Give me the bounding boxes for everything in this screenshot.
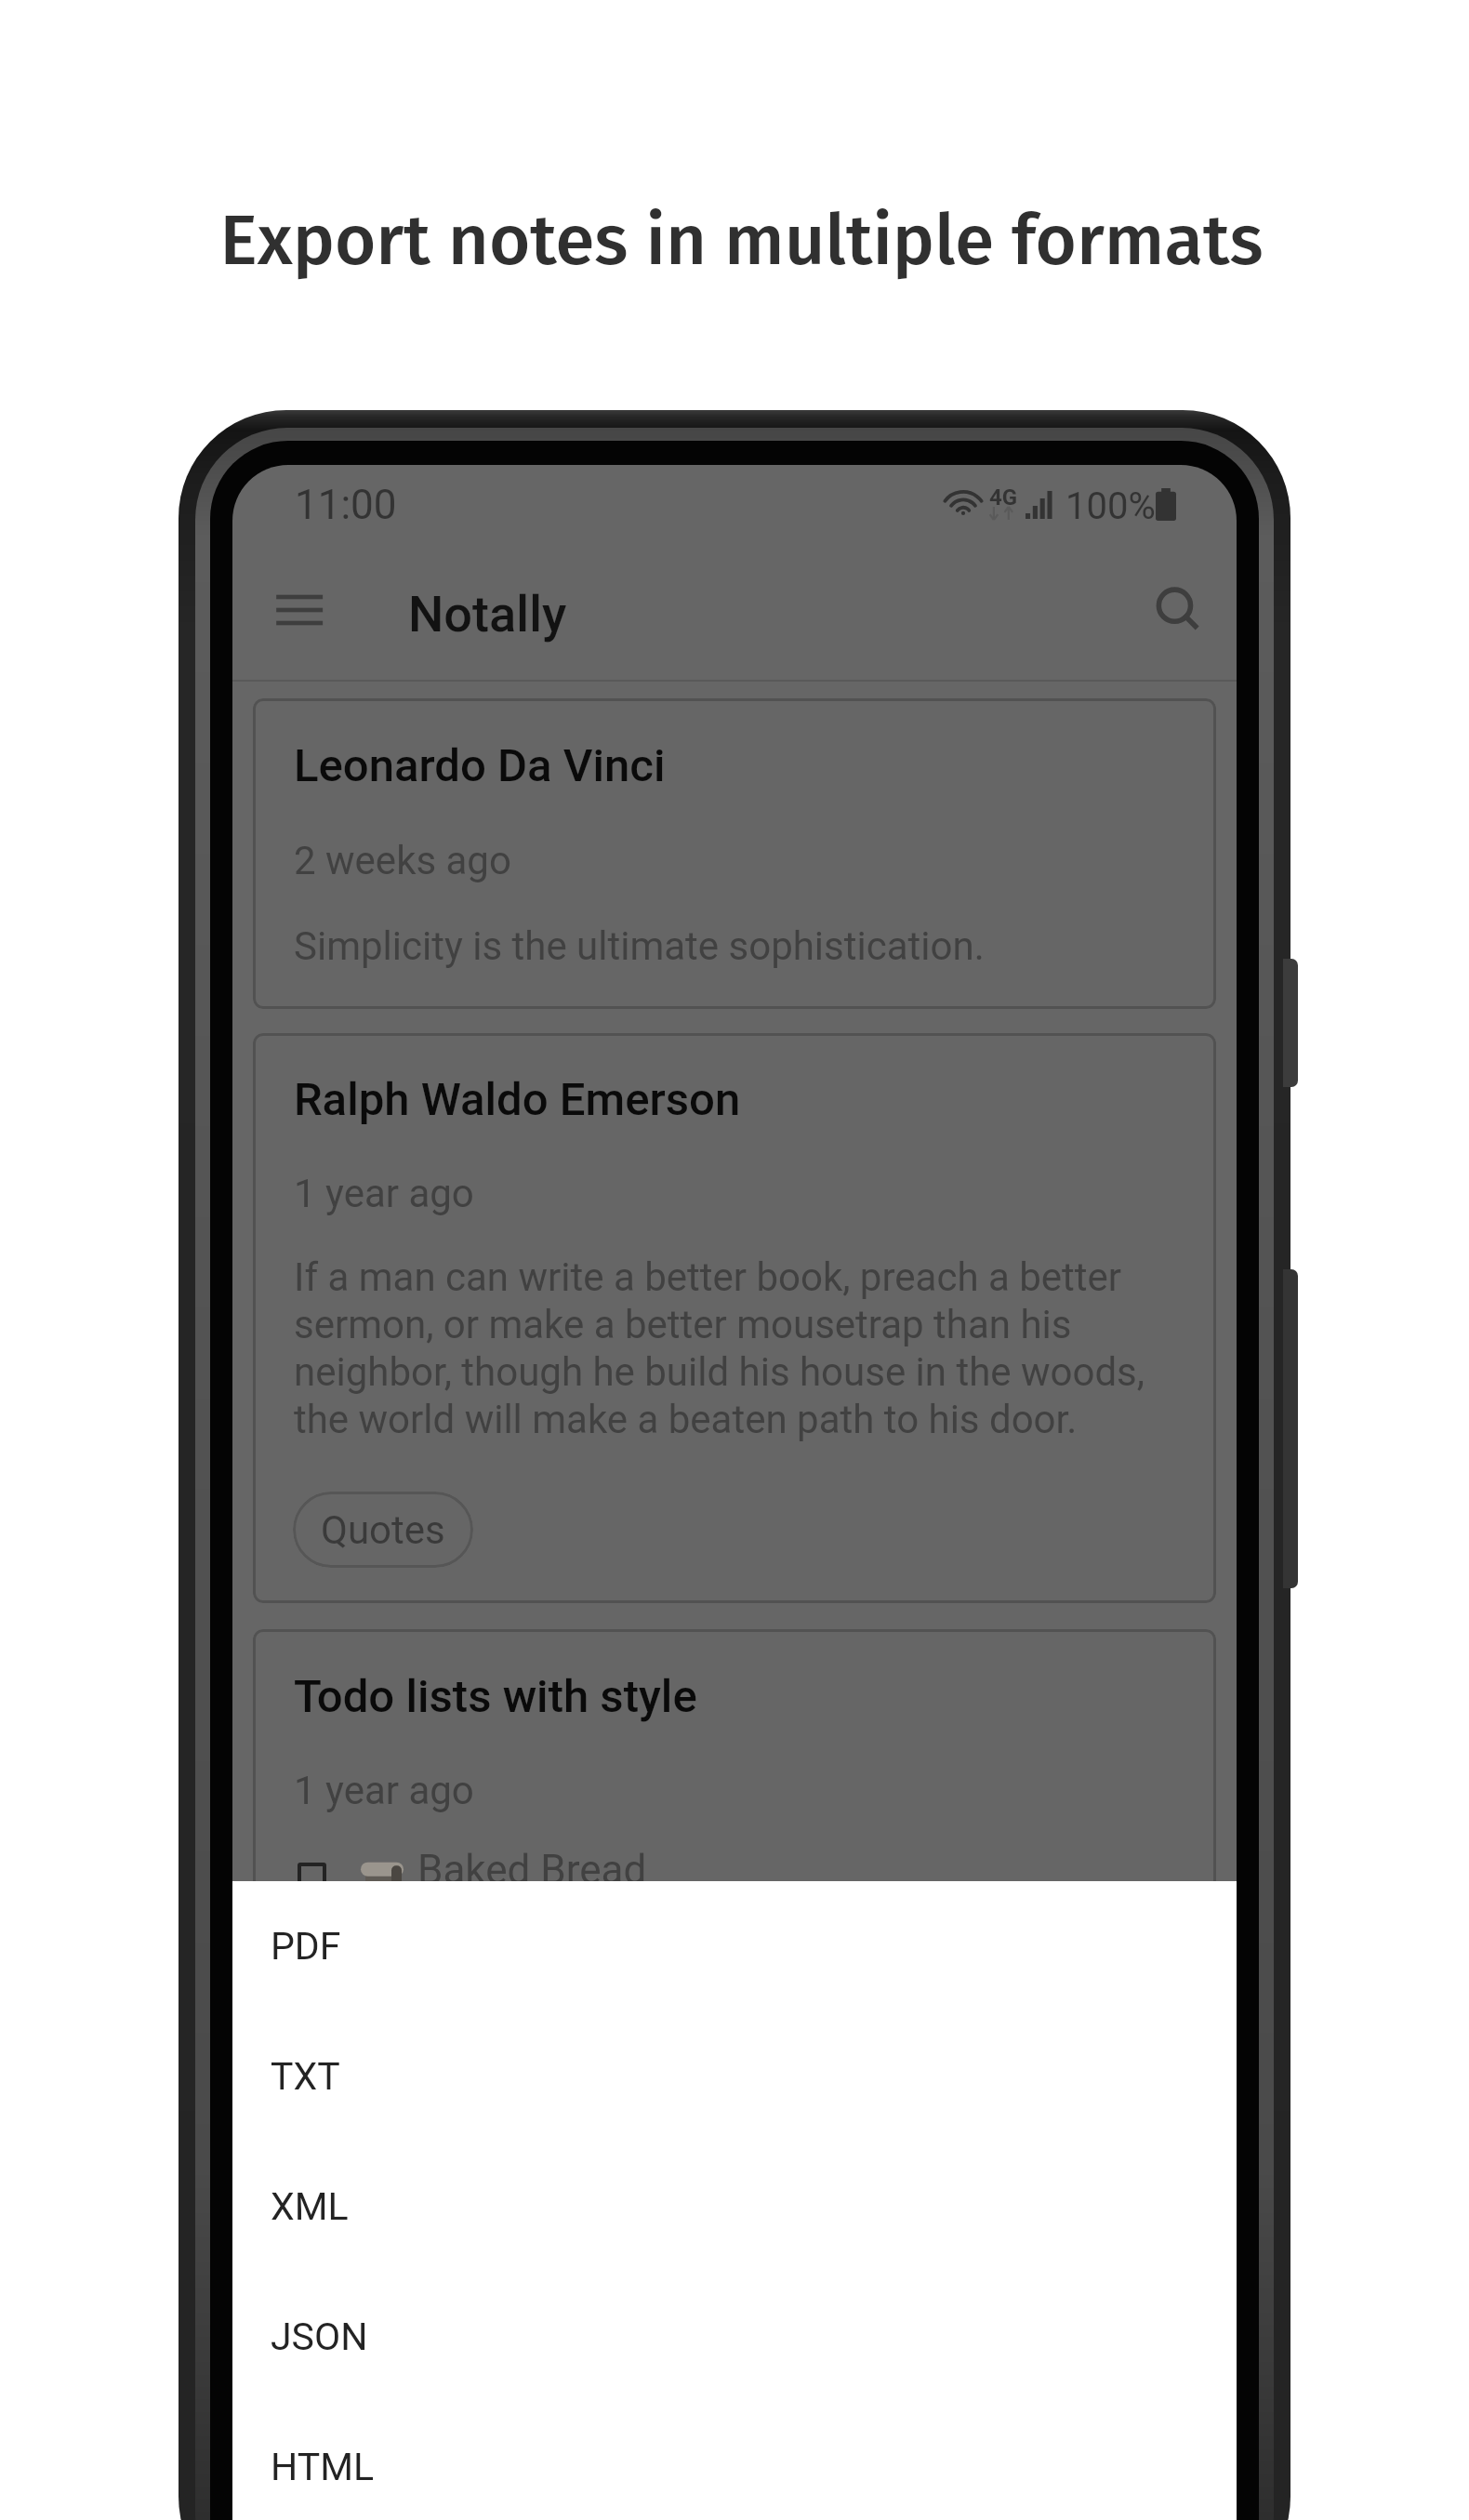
staticText: XML [271,2184,349,2229]
staticText: 2 weeks ago [294,838,511,883]
staticText: 100% [1065,484,1156,528]
staticText: Export notes in multiple formats [219,198,1264,283]
staticText: Todo lists with style [294,1670,697,1723]
button[interactable]: Toggle Baked Bread [298,1863,326,1891]
staticText: Simplicity is the ultimate sophisticatio… [294,923,985,969]
button[interactable]: XML [232,2142,1237,2272]
staticText: 1 year ago [294,1171,474,1216]
staticText: Baked Bread [417,1846,647,1894]
button[interactable]: Open navigation menu [258,573,348,647]
staticText: If a man can write a better book, preach… [294,1254,1196,1443]
button[interactable]: Leonardo Da Vinci [253,698,1216,1009]
staticText: JSON [271,2314,368,2359]
staticText: Ralph Waldo Emerson [294,1073,741,1126]
staticText: HTML [271,2445,375,2489]
button[interactable]: Todo lists with style [253,1629,1216,2046]
staticText: 4G [989,484,1018,511]
staticText: Notally [408,585,567,643]
button[interactable]: PDF [232,1881,1237,2011]
button[interactable]: Search [1129,565,1218,655]
button[interactable]: Ralph Waldo Emerson [253,1033,1216,1603]
staticText: 11:00 [295,481,397,529]
button[interactable]: HTML [232,2402,1237,2520]
button[interactable]: JSON [232,2272,1237,2402]
button[interactable]: Quotes [293,1492,473,1568]
button[interactable]: TXT [232,2011,1237,2142]
staticText: Quotes [321,1507,445,1553]
staticText: Leonardo Da Vinci [294,739,666,792]
staticText: 1 year ago [294,1768,474,1813]
staticText: TXT [271,2054,340,2099]
staticText: PDF [271,1924,341,1969]
